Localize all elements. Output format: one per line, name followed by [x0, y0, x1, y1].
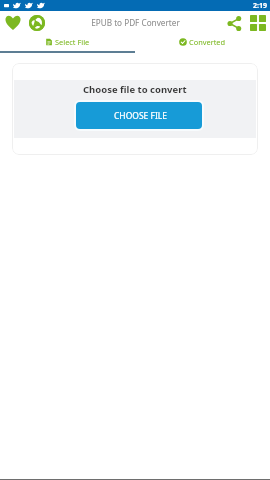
staticText: Choose file to convert [83, 83, 187, 96]
button[interactable]: Select File [0, 34, 135, 49]
button[interactable]: Language [26, 12, 48, 34]
staticText: 2:19 [253, 1, 267, 11]
staticText: CHOOSE FILE [114, 110, 168, 122]
button[interactable]: More apps [247, 12, 269, 34]
button[interactable]: Converted [135, 34, 270, 49]
button[interactable]: Share [223, 12, 245, 34]
staticText: Select File [55, 37, 90, 47]
staticText: Converted [189, 37, 226, 47]
staticText: EPUB to PDF Converter [48, 17, 223, 28]
button[interactable]: CHOOSE FILE [76, 102, 202, 129]
button[interactable]: Favourite [2, 12, 24, 34]
